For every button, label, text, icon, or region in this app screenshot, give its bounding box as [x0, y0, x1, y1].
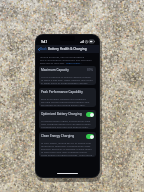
button[interactable]: Optimized Battery Charging	[86, 112, 94, 117]
staticText: iPhone batteries, like all rechargeable …	[40, 55, 95, 58]
staticText: 89%	[87, 68, 94, 72]
staticText: In your region, iPhone will try to reduc…	[41, 141, 94, 144]
staticText: To reduce battery aging, iPhone learns f…	[41, 119, 94, 122]
staticText: Built-in dynamic software and hardware s…	[41, 97, 94, 100]
staticText: be noticed as your iPhone battery ages.	[41, 103, 86, 106]
staticText: emission electricity is available. iPhon…	[41, 147, 94, 150]
staticText: are a consumable component that becomes …	[40, 58, 95, 61]
staticText: Back	[40, 47, 47, 51]
staticText: This is a measure of battery capacity re…	[41, 75, 91, 78]
staticText: in fewer hours of usage between charges.	[41, 81, 89, 84]
staticText: to learn from your daily charging routin…	[41, 150, 94, 153]
button[interactable]: Back	[36, 46, 49, 52]
staticText: will help counter performance impacts th…	[41, 100, 94, 103]
button[interactable]: Peak Performance Capability	[39, 88, 96, 96]
staticText: Clean Energy Charging activates. Learn m…	[41, 153, 94, 156]
staticText: 9:41	[41, 40, 48, 44]
staticText: to when it was new. Lower capacity may r…	[41, 78, 93, 81]
button[interactable]: Clean Energy Charging	[86, 134, 94, 139]
button[interactable]: Maximum Capacity	[39, 66, 96, 74]
staticText: charging past 80% until you need to use …	[41, 125, 89, 128]
staticText: Learn more...	[66, 61, 82, 64]
button[interactable]: Clean Energy Charging	[39, 132, 96, 140]
staticText: effective as they age.	[40, 61, 66, 64]
staticText: footprint by selectively charging when l…	[41, 144, 94, 147]
staticText: Maximum Capacity	[41, 68, 69, 72]
staticText: Battery Health & Charging	[48, 47, 87, 51]
button[interactable]: Optimized Battery Charging	[39, 110, 96, 118]
staticText: Clean Energy Charging	[41, 134, 75, 138]
staticText: Peak Performance Capability	[41, 90, 83, 94]
staticText: daily charging routine so it can wait to…	[41, 122, 91, 125]
staticText: Optimized Battery Charging	[41, 112, 82, 116]
